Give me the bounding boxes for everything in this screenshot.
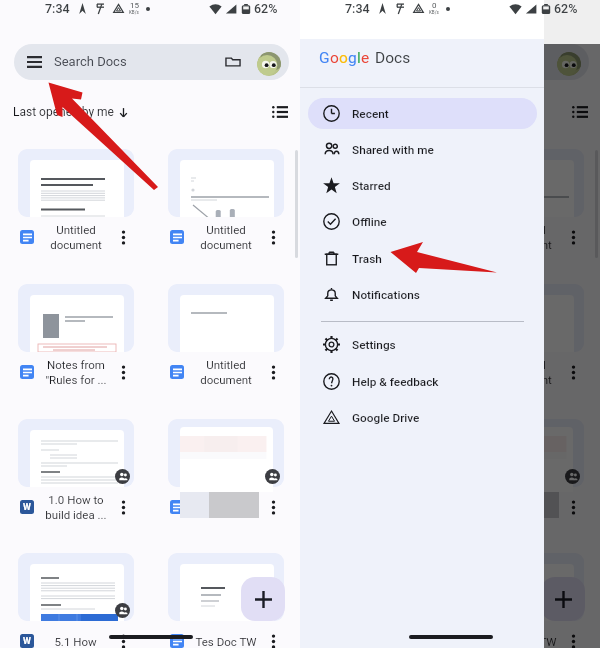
- button[interactable]: Account: [257, 52, 281, 76]
- button[interactable]: Switch to list view: [272, 104, 288, 120]
- staticText: l: [357, 49, 361, 67]
- button[interactable]: More options: [566, 634, 581, 648]
- button[interactable]: Last opened by me: [313, 105, 429, 119]
- staticText: Untitled document: [200, 358, 252, 387]
- staticText: o: [330, 49, 339, 67]
- staticText: 15: [430, 1, 439, 10]
- staticText: Untitled document: [500, 223, 552, 252]
- button[interactable]: Notifications: [308, 279, 537, 310]
- button[interactable]: More options: [116, 365, 131, 380]
- staticText: 5.1 How: [54, 635, 97, 648]
- staticText: Search Docs: [354, 54, 427, 69]
- staticText: G: [319, 49, 330, 67]
- button[interactable]: Notes from "Rules for ...: [18, 284, 134, 392]
- staticText: Notes from "Rules for ...: [345, 358, 407, 387]
- staticText: Google Drive: [352, 411, 420, 425]
- staticText: 0: [432, 1, 437, 10]
- button[interactable]: More options: [266, 500, 281, 515]
- button[interactable]: More options: [116, 230, 131, 245]
- button[interactable]: Untitled document: [318, 149, 434, 257]
- staticText: 7:34: [345, 1, 370, 16]
- button[interactable]: Untitled document: [168, 284, 284, 392]
- staticText: 1.0 How to build idea ...: [45, 493, 107, 522]
- button[interactable]: Untitled document: [468, 284, 584, 392]
- button[interactable]: More options: [566, 365, 581, 380]
- button[interactable]: More options: [566, 230, 581, 245]
- staticText: Last opened by me: [13, 105, 114, 119]
- staticText: Notifications: [352, 288, 420, 302]
- button[interactable]: Trash: [308, 243, 537, 274]
- button[interactable]: More options: [416, 634, 431, 648]
- staticText: Last opened by me: [313, 105, 414, 119]
- staticText: Search Docs: [54, 54, 127, 69]
- button[interactable]: Create new document: [541, 577, 585, 621]
- button[interactable]: W: [318, 419, 434, 527]
- button[interactable]: More options: [266, 634, 281, 648]
- staticText: W: [23, 636, 31, 647]
- button[interactable]: W: [18, 553, 134, 648]
- button[interactable]: Google Drive: [308, 402, 537, 433]
- staticText: 62%: [554, 1, 578, 16]
- button[interactable]: Notes from "Rules for ...: [318, 284, 434, 392]
- button[interactable]: Last opened by me: [13, 105, 129, 119]
- button[interactable]: More options: [416, 230, 431, 245]
- button[interactable]: Shared with me: [308, 134, 537, 165]
- button[interactable]: More options: [266, 230, 281, 245]
- staticText: Tes Doc TW: [195, 635, 257, 648]
- staticText: Untitled document: [200, 223, 252, 252]
- staticText: 62%: [254, 1, 278, 16]
- button[interactable]: W: [318, 553, 434, 648]
- button[interactable]: Starred: [308, 170, 537, 201]
- button[interactable]: Open navigation menu: [14, 44, 289, 80]
- staticText: Untitled document: [500, 358, 552, 387]
- button[interactable]: W: [18, 419, 134, 527]
- button[interactable]: Offline: [308, 206, 537, 237]
- staticText: Starred: [352, 179, 391, 193]
- staticText: o: [339, 49, 348, 67]
- button[interactable]: More options: [566, 500, 581, 515]
- button[interactable]: Switch to list view: [572, 104, 588, 120]
- staticText: KB/s: [129, 10, 139, 15]
- button[interactable]: More options: [168, 419, 284, 527]
- button[interactable]: Help & feedback: [308, 366, 537, 397]
- staticText: 7:34: [345, 1, 370, 16]
- button[interactable]: Untitled document: [468, 149, 584, 257]
- button[interactable]: Account: [557, 52, 581, 76]
- button[interactable]: Settings: [308, 329, 537, 360]
- other: Open navigation menu: [27, 56, 42, 68]
- button[interactable]: More options: [116, 500, 131, 515]
- staticText: g: [348, 49, 357, 67]
- staticText: Offline: [352, 215, 387, 229]
- button[interactable]: Create new document: [241, 577, 285, 621]
- staticText: KB/s: [429, 10, 439, 15]
- staticText: KB/s: [429, 10, 439, 15]
- staticText: 15: [130, 1, 139, 10]
- button[interactable]: Recent: [308, 98, 537, 129]
- staticText: Docs: [375, 49, 411, 67]
- button[interactable]: Untitled document: [18, 149, 134, 257]
- button[interactable]: Tes Doc TW: [168, 553, 284, 648]
- button[interactable]: Folder: [225, 55, 241, 69]
- staticText: e: [361, 49, 370, 67]
- staticText: Recent: [352, 107, 389, 121]
- staticText: Notes from "Rules for ...: [45, 358, 107, 387]
- staticText: Untitled document: [350, 223, 402, 252]
- button[interactable]: More options: [116, 634, 131, 648]
- staticText: 62%: [554, 1, 578, 16]
- button[interactable]: Open navigation menu: [314, 44, 589, 80]
- staticText: Shared with me: [352, 143, 434, 157]
- button[interactable]: More options: [266, 365, 281, 380]
- staticText: Tes Doc TW: [495, 635, 557, 648]
- staticText: Trash: [352, 252, 382, 266]
- button[interactable]: Untitled document: [168, 149, 284, 257]
- staticText: Help & feedback: [352, 375, 439, 389]
- button[interactable]: Tes Doc TW: [468, 553, 584, 648]
- button[interactable]: More options: [468, 419, 584, 527]
